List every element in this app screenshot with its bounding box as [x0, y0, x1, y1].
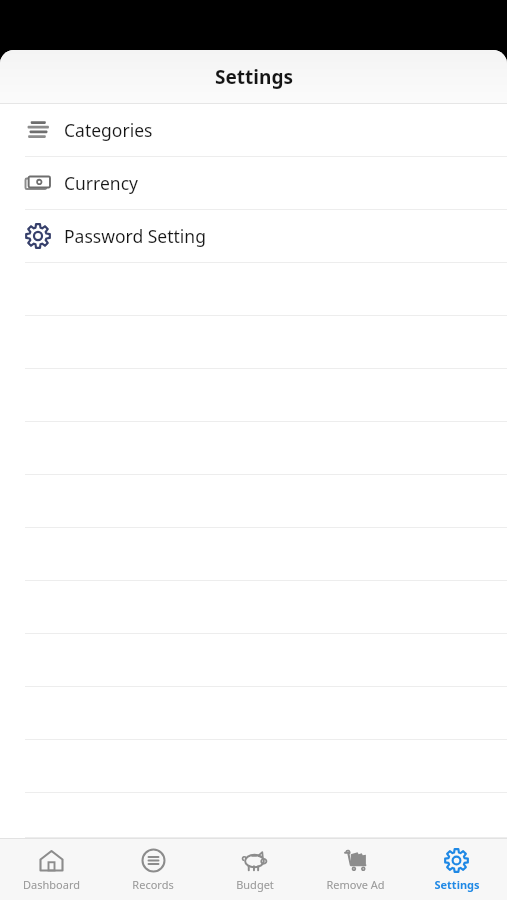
staticText: Categories — [64, 118, 153, 142]
button[interactable]: Dashboard — [0, 839, 102, 900]
staticText: Currency — [64, 171, 138, 195]
button[interactable]: Settings — [406, 839, 507, 900]
button[interactable]: Password Setting — [0, 210, 507, 263]
button[interactable]: Remove Ad — [305, 839, 406, 900]
staticText: Budget — [236, 877, 274, 892]
staticText: Remove Ad — [326, 877, 385, 892]
staticText: Settings — [215, 64, 293, 90]
button[interactable]: Categories — [0, 104, 507, 157]
staticText: Dashboard — [23, 877, 80, 892]
staticText: Records — [132, 877, 174, 892]
staticText: Settings — [434, 877, 480, 892]
button[interactable]: Currency — [0, 157, 507, 210]
staticText: Password Setting — [64, 224, 206, 248]
button[interactable]: Records — [102, 839, 204, 900]
button[interactable]: Budget — [204, 839, 305, 900]
